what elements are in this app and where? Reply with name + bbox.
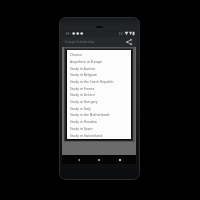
- staticText: Study in the Czech Republic: [70, 79, 114, 84]
- button[interactable]: Study in Spain: [67, 125, 131, 132]
- button[interactable]: Home: [95, 156, 103, 164]
- staticText: Study in Greece: [70, 92, 95, 97]
- button[interactable]: Study in Slovakia: [67, 118, 131, 125]
- button[interactable]: Study in Hungary: [67, 98, 131, 105]
- button[interactable]: Study in Belgium: [67, 71, 131, 78]
- button[interactable]: Study in the Czech Republic: [67, 78, 131, 85]
- staticText: Study in Hungary: [70, 99, 98, 104]
- staticText: Europe Scholarship: [65, 40, 94, 44]
- button[interactable]: Share: [123, 37, 134, 47]
- button[interactable]: Anywhere in Europe: [67, 58, 131, 65]
- staticText: Study in France: [70, 86, 95, 91]
- staticText: Choose: [70, 52, 82, 57]
- button[interactable]: Study in Italy: [67, 105, 131, 112]
- button[interactable]: Choose: [67, 51, 131, 58]
- button[interactable]: Study in Austria: [67, 65, 131, 72]
- staticText: Study in Belgium: [70, 72, 97, 77]
- button[interactable]: Study in France: [67, 85, 131, 92]
- staticText: Study in Italy: [70, 106, 91, 111]
- button[interactable]: Study in the Netherlands: [67, 111, 131, 118]
- staticText: Study in Slovakia: [70, 119, 97, 124]
- button[interactable]: Back: [75, 156, 83, 164]
- button[interactable]: Recents: [116, 156, 124, 164]
- button[interactable]: Study in Switzerland: [67, 132, 131, 139]
- staticText: Anywhere in Europe: [70, 59, 103, 64]
- button[interactable]: Study in Greece: [67, 91, 131, 98]
- staticText: Study in Austria: [70, 66, 96, 71]
- staticText: Study in Spain: [70, 126, 93, 131]
- staticText: Study in Switzerland: [70, 133, 103, 138]
- staticText: Study in the Netherlands: [70, 112, 110, 117]
